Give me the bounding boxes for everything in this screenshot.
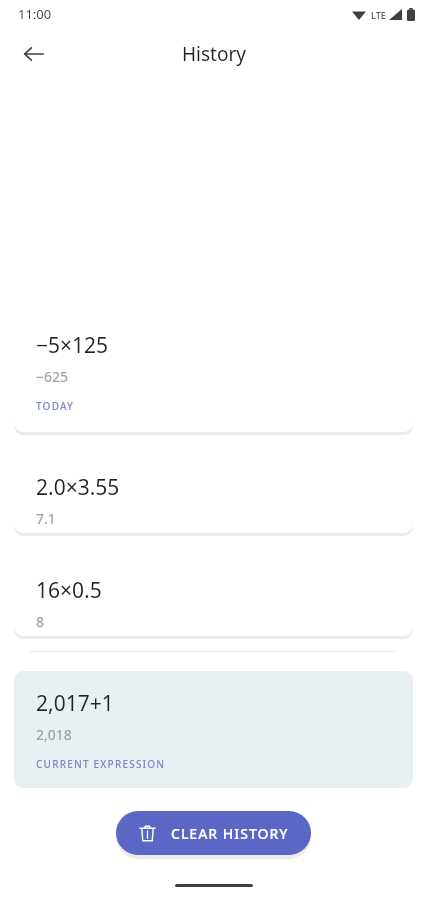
staticText: 2,018 bbox=[36, 725, 72, 744]
staticText: 2.0×3.55 bbox=[36, 473, 120, 502]
staticText: TODAY bbox=[36, 399, 75, 413]
button[interactable]: Back bbox=[12, 32, 56, 76]
button[interactable]: 16×0.5 bbox=[14, 558, 413, 636]
staticText: LTE bbox=[371, 9, 386, 21]
staticText: 11:00 bbox=[18, 5, 52, 23]
staticText: 8 bbox=[36, 612, 45, 631]
button[interactable]: 2,017+1 bbox=[14, 671, 413, 788]
staticText: 7.1 bbox=[36, 509, 56, 528]
staticText: −625 bbox=[36, 367, 69, 386]
staticText: CLEAR HISTORY bbox=[171, 824, 289, 843]
staticText: 2,017+1 bbox=[36, 689, 114, 718]
button[interactable]: 2.0×3.55 bbox=[14, 455, 413, 533]
button[interactable]: CLEAR HISTORY bbox=[116, 811, 311, 855]
button[interactable]: −5×125 bbox=[14, 313, 413, 432]
staticText: 16×0.5 bbox=[36, 576, 102, 605]
staticText: CURRENT EXPRESSION bbox=[36, 757, 166, 771]
staticText: History bbox=[182, 41, 246, 67]
staticText: −5×125 bbox=[36, 331, 109, 360]
